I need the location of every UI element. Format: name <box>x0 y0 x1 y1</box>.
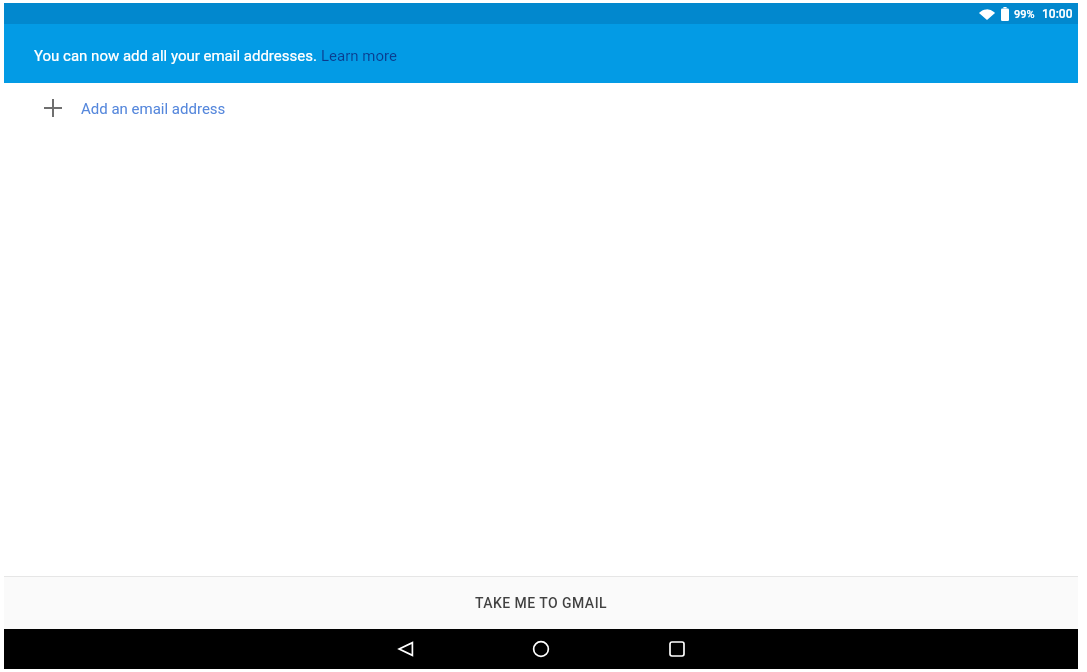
staticText: Add an email address <box>81 100 226 118</box>
button[interactable]: Home <box>520 629 562 669</box>
button[interactable]: You can now add all your email addresses… <box>4 24 1078 83</box>
staticText: 99% <box>1014 8 1035 21</box>
staticText: 10:00 <box>1042 7 1073 21</box>
button[interactable]: Add an email address <box>4 83 1078 133</box>
button[interactable]: Recent apps <box>656 629 698 669</box>
staticText: You can now add all your email addresses… <box>34 47 321 65</box>
button[interactable]: TAKE ME TO GMAIL <box>4 577 1078 629</box>
staticText: TAKE ME TO GMAIL <box>475 595 608 611</box>
staticText: Learn more <box>321 47 397 65</box>
button[interactable]: Learn more <box>321 47 397 65</box>
button[interactable]: Back <box>385 629 427 669</box>
